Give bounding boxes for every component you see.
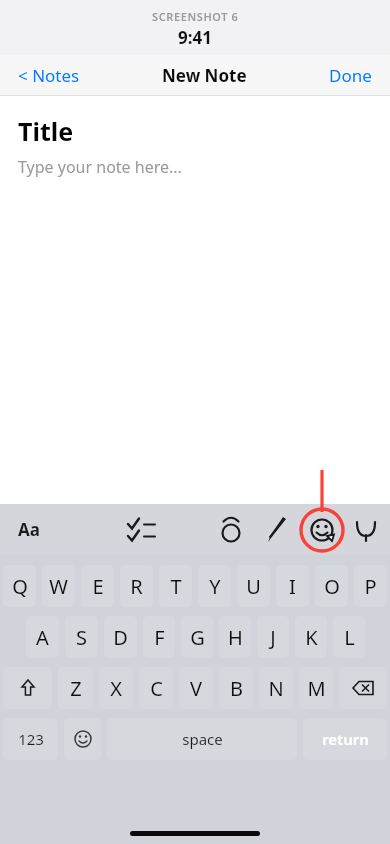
staticText: W xyxy=(49,573,68,600)
button[interactable]: < Notes xyxy=(14,58,84,93)
staticText: Y xyxy=(209,573,221,600)
button[interactable]: return xyxy=(303,718,387,760)
button[interactable]: Aa xyxy=(8,510,50,549)
staticText: G xyxy=(190,624,205,651)
staticText: return xyxy=(322,729,369,749)
staticText: Z xyxy=(70,675,82,702)
staticText: Title xyxy=(18,114,74,148)
button[interactable]: G xyxy=(181,616,213,658)
button[interactable]: W xyxy=(42,565,75,607)
staticText: X xyxy=(110,675,122,702)
button[interactable]: S xyxy=(65,616,98,658)
staticText: New Note xyxy=(162,64,247,87)
button[interactable]: Hide Keyboard xyxy=(344,508,388,552)
staticText: I xyxy=(289,573,296,600)
staticText: E xyxy=(92,573,104,600)
staticText: F xyxy=(154,624,165,651)
button[interactable]: Z xyxy=(58,667,93,709)
button[interactable]: V xyxy=(179,667,213,709)
button[interactable]: E xyxy=(81,565,114,607)
staticText: H xyxy=(228,624,243,651)
staticText: N xyxy=(268,675,284,702)
staticText: C xyxy=(150,675,163,702)
button[interactable]: Y xyxy=(198,565,231,607)
button[interactable]: K xyxy=(295,616,327,658)
button[interactable]: D xyxy=(104,616,137,658)
button[interactable]: R xyxy=(120,565,153,607)
button[interactable]: space xyxy=(107,718,297,760)
button[interactable]: U xyxy=(237,565,270,607)
staticText: SCREENSHOT 6 xyxy=(152,9,239,24)
button[interactable]: B xyxy=(219,667,253,709)
button[interactable]: Q xyxy=(3,565,36,607)
staticText: R xyxy=(130,573,143,600)
button[interactable]: T xyxy=(159,565,192,607)
staticText: V xyxy=(190,675,202,702)
button[interactable]: H xyxy=(219,616,251,658)
staticText: J xyxy=(270,624,276,651)
button[interactable]: N xyxy=(259,667,293,709)
staticText: U xyxy=(246,573,261,600)
staticText: P xyxy=(364,573,377,600)
staticText: 123 xyxy=(18,729,44,749)
staticText: K xyxy=(305,624,318,651)
button[interactable]: Camera xyxy=(209,508,253,552)
staticText: B xyxy=(230,675,243,702)
staticText: D xyxy=(113,624,128,651)
staticText: < Notes xyxy=(18,64,80,87)
button[interactable]: A xyxy=(26,616,59,658)
staticText: 9:41 xyxy=(178,26,212,49)
button[interactable]: 123 xyxy=(3,718,58,760)
button[interactable]: I xyxy=(276,565,309,607)
button[interactable]: Done xyxy=(325,58,376,93)
button[interactable]: Backspace xyxy=(339,667,387,709)
staticText: O xyxy=(324,573,340,600)
button[interactable]: P xyxy=(354,565,387,607)
button[interactable]: Markup xyxy=(300,508,344,552)
button[interactable]: Emoji xyxy=(64,718,101,760)
staticText: Q xyxy=(12,573,28,600)
button[interactable]: F xyxy=(143,616,175,658)
staticText: A xyxy=(36,624,49,651)
staticText: T xyxy=(170,573,182,600)
staticText: Type your note here... xyxy=(18,156,182,178)
button[interactable]: C xyxy=(139,667,173,709)
staticText: L xyxy=(344,624,355,651)
staticText: Done xyxy=(329,64,372,87)
button[interactable]: O xyxy=(315,565,348,607)
staticText: M xyxy=(307,675,326,702)
button[interactable]: Draw xyxy=(255,508,299,552)
button[interactable]: Shift xyxy=(3,667,52,709)
button[interactable]: X xyxy=(99,667,133,709)
button[interactable]: J xyxy=(257,616,289,658)
staticText: Aa xyxy=(18,518,40,541)
staticText: S xyxy=(76,624,87,651)
button[interactable]: Checklist xyxy=(120,508,164,552)
button[interactable]: L xyxy=(333,616,365,658)
button[interactable]: M xyxy=(299,667,333,709)
staticText: space xyxy=(182,729,223,749)
